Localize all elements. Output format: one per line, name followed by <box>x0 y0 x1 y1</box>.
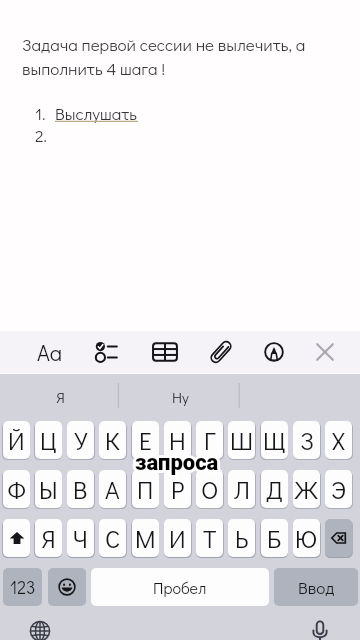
button[interactable]: Б <box>261 519 288 557</box>
staticText: Ц <box>40 424 57 457</box>
button[interactable]: Switch keyboard <box>24 615 56 640</box>
button[interactable]: С <box>99 519 126 557</box>
button[interactable]: Emoji <box>48 568 86 606</box>
button[interactable]: Close <box>304 331 346 373</box>
staticText: О <box>201 473 219 506</box>
staticText: Б <box>267 522 282 555</box>
button[interactable]: Н <box>164 421 191 459</box>
staticText: Щ <box>263 424 286 457</box>
staticText: Ш <box>230 424 254 457</box>
staticText: Л <box>234 473 250 506</box>
staticText: 2. <box>35 124 47 146</box>
staticText: Aa <box>37 338 63 367</box>
button[interactable]: В <box>67 470 94 508</box>
button[interactable]: Dictate <box>304 615 336 640</box>
button[interactable]: Р <box>164 470 191 508</box>
staticText: В <box>73 473 88 506</box>
button[interactable]: Пробел <box>91 568 269 606</box>
button[interactable]: Е <box>132 421 159 459</box>
staticText: Й <box>8 424 25 457</box>
button[interactable]: З <box>293 421 320 459</box>
button[interactable]: Д <box>261 470 288 508</box>
staticText: Ы <box>39 473 58 506</box>
button[interactable]: Ы <box>35 470 62 508</box>
button[interactable]: К <box>99 421 126 459</box>
button[interactable]: Ж <box>293 470 320 508</box>
staticText: А <box>105 473 120 506</box>
staticText: 1. <box>35 102 46 124</box>
button[interactable]: М <box>132 519 159 557</box>
staticText: Ну <box>172 387 189 407</box>
staticText: Д <box>266 473 283 506</box>
button[interactable]: П <box>132 470 159 508</box>
staticText: С <box>105 522 121 555</box>
button[interactable]: Ч <box>67 519 94 557</box>
button[interactable]: Л <box>228 470 255 508</box>
button[interactable]: Ю <box>293 519 320 557</box>
staticText: запроса <box>135 450 219 476</box>
button[interactable]: Backspace <box>325 519 352 557</box>
button[interactable]: И <box>164 519 191 557</box>
button[interactable]: Attach file <box>200 331 242 373</box>
button[interactable]: Т <box>196 519 223 557</box>
button[interactable]: Я <box>35 519 62 557</box>
button[interactable]: Text format <box>29 331 71 373</box>
button[interactable]: Ш <box>228 421 255 459</box>
staticText: Г <box>204 424 216 457</box>
staticText: Задача первой сессии не вылечить, а выпо… <box>22 33 312 80</box>
staticText: М <box>135 522 156 555</box>
staticText: Р <box>171 473 185 506</box>
staticText: Пробел <box>153 577 207 598</box>
staticText: Т <box>203 522 217 555</box>
staticText: Ф <box>7 473 27 506</box>
staticText: Н <box>169 424 186 457</box>
staticText: И <box>169 522 186 555</box>
staticText: Выслушать <box>55 102 138 124</box>
staticText: Э <box>331 473 347 506</box>
staticText: Ввод <box>298 576 335 598</box>
button[interactable]: А <box>99 470 126 508</box>
button[interactable]: О <box>196 470 223 508</box>
staticText: З <box>300 424 314 457</box>
button[interactable]: Э <box>325 470 352 508</box>
staticText: Ж <box>294 473 319 506</box>
button[interactable]: Й <box>3 421 30 459</box>
button[interactable]: Г <box>196 421 223 459</box>
staticText: Е <box>139 424 152 457</box>
button[interactable]: Ц <box>35 421 62 459</box>
staticText: К <box>105 424 121 457</box>
button[interactable]: Checklist <box>87 331 129 373</box>
staticText: 123 <box>10 576 36 599</box>
button[interactable]: Ввод <box>274 568 358 606</box>
button[interactable]: Shift <box>3 519 30 557</box>
staticText: Я <box>41 522 56 555</box>
button[interactable]: Table <box>144 331 186 373</box>
button[interactable]: У <box>67 421 94 459</box>
button[interactable]: Ь <box>228 519 255 557</box>
staticText: У <box>74 424 88 457</box>
button[interactable]: Markup <box>253 331 295 373</box>
button[interactable]: Ф <box>3 470 30 508</box>
button[interactable]: Я <box>0 374 120 419</box>
staticText: Х <box>332 424 345 457</box>
staticText: Я <box>56 387 65 407</box>
staticText: Ч <box>73 522 88 555</box>
button[interactable]: 123 <box>3 568 42 606</box>
button[interactable]: Щ <box>261 421 288 459</box>
staticText: П <box>137 473 154 506</box>
button[interactable]: Х <box>325 421 352 459</box>
staticText: запроса <box>135 450 219 476</box>
staticText: Ь <box>235 522 249 555</box>
staticText: Ю <box>295 522 318 555</box>
button[interactable]: Ну <box>120 374 240 419</box>
